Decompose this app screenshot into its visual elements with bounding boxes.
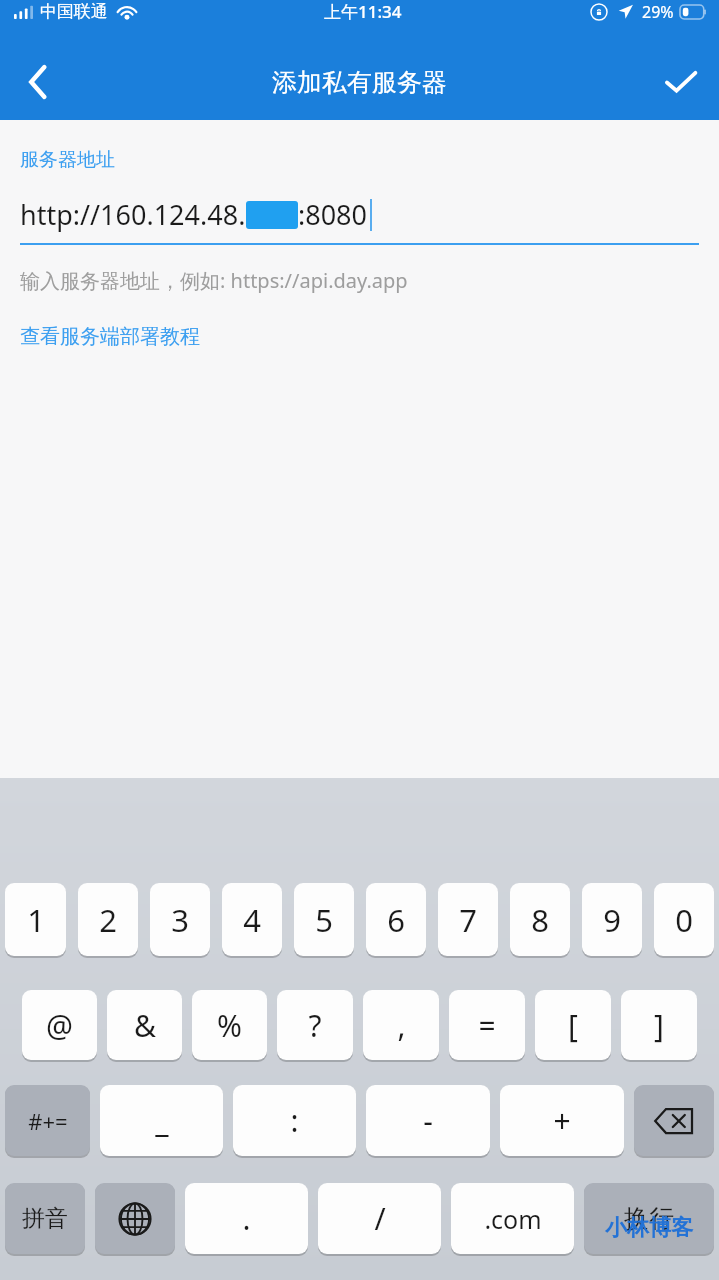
staticText: 添加私有服务器 (272, 67, 447, 98)
button[interactable]: .com (451, 1183, 574, 1254)
staticText: #+= (28, 1106, 68, 1136)
staticText: 2 (99, 899, 117, 941)
button[interactable]: 6 (366, 883, 426, 956)
button[interactable]: : (233, 1085, 356, 1156)
button[interactable]: 0 (654, 883, 714, 956)
staticText: http://160.124.48. (20, 196, 246, 233)
button[interactable]: 4 (222, 883, 282, 956)
staticText: [ (568, 1005, 578, 1046)
button[interactable]: 1 (5, 883, 66, 956)
staticText: 小林博客 (605, 1214, 693, 1242)
staticText: / (374, 1198, 386, 1239)
staticText: 上午11:34 (324, 0, 402, 23)
button[interactable]: [ (535, 990, 611, 1060)
button[interactable]: 5 (294, 883, 354, 956)
button[interactable]: 查看服务端部署教程 (20, 324, 200, 349)
button[interactable]: Backspace (634, 1085, 714, 1156)
staticText: 输入服务器地址，例如: https://api.day.app (20, 267, 408, 294)
button[interactable]: ] (621, 990, 697, 1060)
staticText: 5 (315, 899, 333, 941)
staticText: 9 (603, 899, 621, 941)
staticText: 29% (642, 1, 674, 23)
button[interactable]: ? (277, 990, 353, 1060)
button[interactable]: 7 (438, 883, 498, 956)
staticText: .com (484, 1202, 542, 1236)
button[interactable]: 拼音 (5, 1183, 85, 1254)
button[interactable]: 8 (510, 883, 570, 956)
staticText: 3 (171, 899, 189, 941)
staticText: 换行 (624, 1203, 674, 1234)
button[interactable]: Switch keyboard (95, 1183, 175, 1254)
staticText: 7 (459, 899, 477, 941)
staticText: 1 (27, 899, 45, 941)
staticText: = (478, 1005, 496, 1046)
button[interactable]: 2 (78, 883, 138, 956)
button[interactable]: & (107, 990, 182, 1060)
staticText: 服务器地址 (20, 148, 115, 172)
button[interactable]: / (318, 1183, 441, 1254)
button[interactable]: + (500, 1085, 624, 1156)
staticText: @ (46, 1005, 73, 1046)
button[interactable]: - (366, 1085, 490, 1156)
staticText: % (217, 1005, 242, 1046)
button[interactable]: . (185, 1183, 308, 1254)
staticText: - (423, 1100, 433, 1141)
staticText: . (242, 1198, 251, 1239)
button[interactable]: _ (100, 1085, 223, 1156)
button[interactable]: % (192, 990, 267, 1060)
button[interactable]: , (363, 990, 439, 1060)
staticText: 4 (243, 899, 261, 941)
staticText: ] (654, 1005, 664, 1046)
staticText: 中国联通 (40, 1, 108, 22)
button[interactable]: 换行 (584, 1183, 714, 1254)
staticText: :8080 (298, 196, 368, 233)
button[interactable]: Confirm (643, 44, 719, 120)
button[interactable]: = (449, 990, 525, 1060)
staticText: & (134, 1005, 156, 1046)
staticText: 拼音 (22, 1204, 68, 1233)
staticText: _ (155, 1100, 169, 1141)
button[interactable]: Back (0, 44, 76, 120)
staticText: ? (308, 1005, 322, 1046)
button[interactable]: 9 (582, 883, 642, 956)
button[interactable]: 3 (150, 883, 210, 956)
staticText: 8 (531, 899, 549, 941)
button[interactable]: @ (22, 990, 97, 1060)
button[interactable]: #+= (5, 1085, 90, 1156)
staticText: 6 (387, 899, 405, 941)
staticText: : (290, 1100, 299, 1141)
staticText: , (397, 1005, 406, 1046)
staticText: + (553, 1100, 571, 1141)
staticText: 0 (675, 899, 693, 941)
